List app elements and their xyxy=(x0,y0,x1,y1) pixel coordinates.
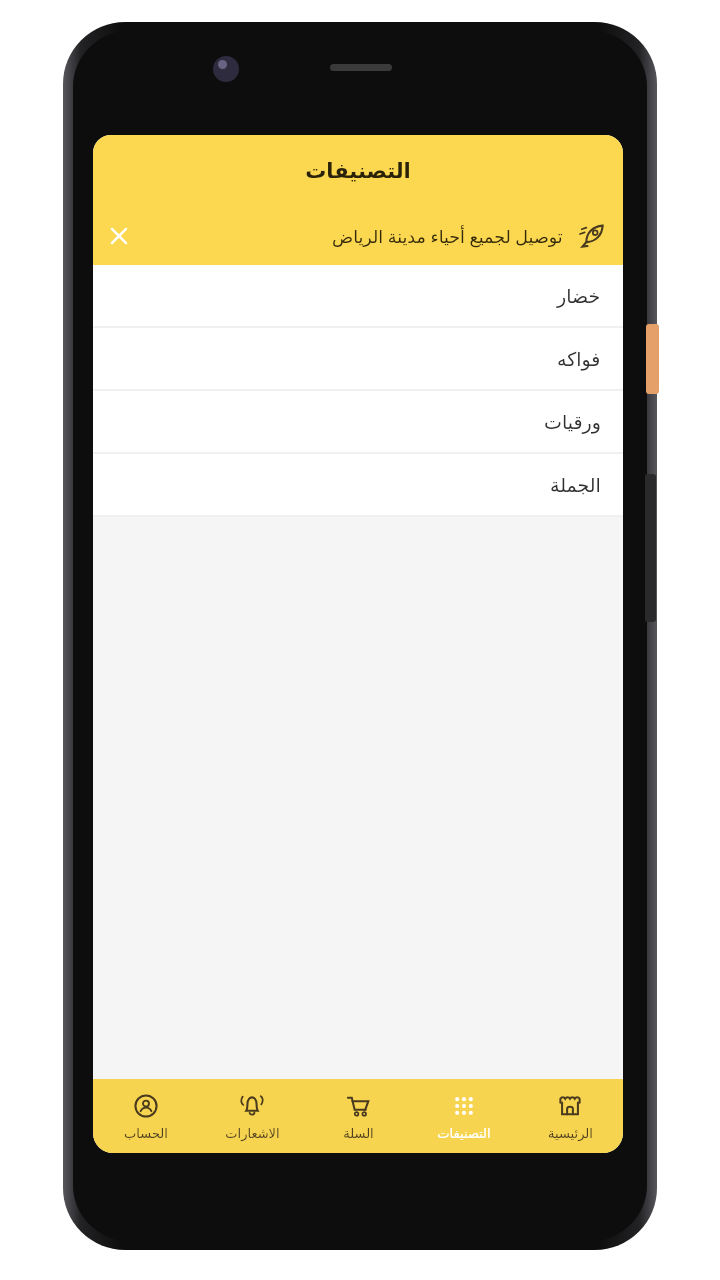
staticText: الحساب xyxy=(124,1126,168,1141)
staticText: الاشعارات xyxy=(225,1126,280,1141)
staticText: ورقيات xyxy=(544,411,601,433)
button[interactable]: التصنيفات xyxy=(411,1079,517,1153)
staticText: التصنيفات xyxy=(437,1126,491,1141)
button[interactable]: الاشعارات xyxy=(199,1079,305,1153)
staticText: فواكه xyxy=(557,348,601,370)
staticText: الجملة xyxy=(550,474,601,496)
button[interactable]: الحساب xyxy=(93,1079,199,1153)
button[interactable]: الجملة xyxy=(93,454,623,515)
staticText: الرئيسية xyxy=(548,1126,593,1141)
staticText: خضار xyxy=(557,285,601,307)
staticText: السلة xyxy=(343,1126,374,1141)
button[interactable]: ورقيات xyxy=(93,391,623,452)
staticText: التصنيفات xyxy=(305,159,411,183)
staticText: توصيل لجميع أحياء مدينة الرياض xyxy=(332,224,563,248)
button[interactable]: إغلاق xyxy=(93,210,145,262)
button[interactable]: فواكه xyxy=(93,328,623,389)
button[interactable]: السلة xyxy=(305,1079,411,1153)
button[interactable]: خضار xyxy=(93,265,623,326)
button[interactable]: الرئيسية xyxy=(517,1079,623,1153)
